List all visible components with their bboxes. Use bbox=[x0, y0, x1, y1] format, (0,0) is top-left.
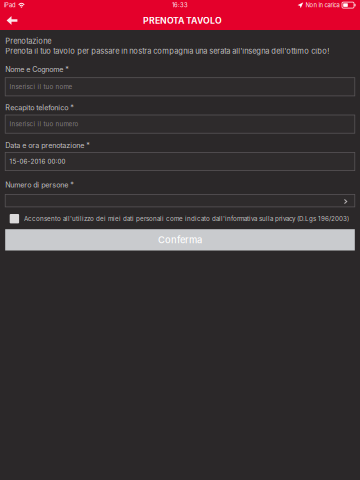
button[interactable]: 15-06-2016 00:00 bbox=[5, 152, 355, 171]
button[interactable]: Inserisci il tuo nome bbox=[5, 78, 355, 96]
staticText: Recapito telefonico * bbox=[5, 103, 74, 112]
staticText: Data e ora prenotazione * bbox=[5, 141, 90, 150]
button[interactable]: Inserisci il tuo numero bbox=[5, 115, 355, 133]
staticText: 16:33 bbox=[172, 1, 188, 9]
staticText: Conferma bbox=[158, 234, 202, 245]
staticText: Non in carica bbox=[306, 1, 340, 9]
staticText: Nome e Cognome * bbox=[5, 65, 69, 74]
staticText: Inserisci il tuo nome bbox=[9, 83, 72, 90]
staticText: 15-06-2016 00:00 bbox=[9, 158, 65, 165]
staticText: PRENOTA TAVOLO bbox=[143, 15, 222, 26]
staticText: Numero di persone * bbox=[5, 180, 74, 189]
staticText: Acconsento all'utilizzo dei miei dati pe… bbox=[24, 215, 349, 222]
button[interactable]: Back bbox=[0, 11, 24, 30]
button[interactable]: Conferma bbox=[5, 229, 355, 250]
button[interactable]: Acconsento all'utilizzo dei miei dati pe… bbox=[5, 214, 355, 224]
button[interactable] bbox=[5, 194, 355, 207]
staticText: iPad bbox=[4, 1, 16, 9]
staticText: Inserisci il tuo numero bbox=[9, 120, 78, 128]
staticText: Prenotazione bbox=[5, 36, 51, 46]
staticText: Prenota il tuo tavolo per passare in nos… bbox=[5, 46, 329, 56]
